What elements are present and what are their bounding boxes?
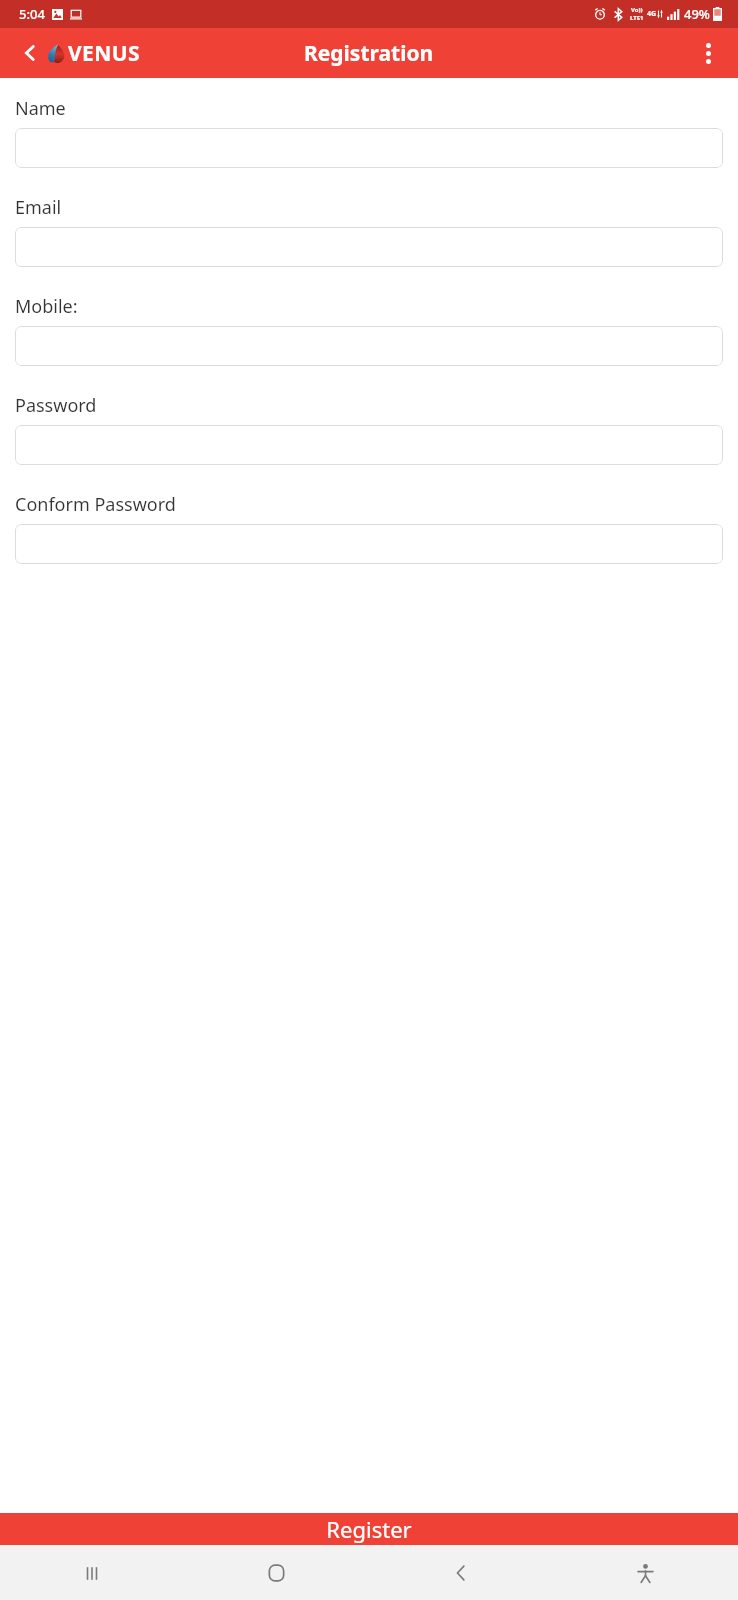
button[interactable]: VENUS <box>44 39 142 68</box>
button[interactable]: Home <box>184 1558 368 1588</box>
button[interactable]: Register <box>0 1513 738 1545</box>
button[interactable]: Back <box>368 1558 553 1588</box>
staticText: Vo)) <box>631 6 643 14</box>
button[interactable] <box>15 326 723 366</box>
staticText: Email <box>15 195 62 220</box>
staticText: 49% <box>684 5 710 23</box>
staticText: VENUS <box>68 39 140 68</box>
button[interactable] <box>15 524 723 564</box>
button[interactable]: Recent apps <box>0 1558 184 1588</box>
button[interactable]: More options <box>688 33 728 73</box>
staticText: 4G <box>647 9 657 19</box>
staticText: Name <box>15 96 66 121</box>
staticText: 5:04 <box>19 5 45 23</box>
staticText: LTE1 <box>630 14 644 22</box>
staticText: Mobile: <box>15 294 78 319</box>
button[interactable] <box>15 128 723 168</box>
button[interactable] <box>15 227 723 267</box>
staticText: Conform Password <box>15 492 176 517</box>
button[interactable]: Back <box>12 35 48 71</box>
staticText: Password <box>15 393 97 418</box>
button[interactable] <box>15 425 723 465</box>
staticText: Register <box>326 1514 412 1544</box>
button[interactable]: Accessibility <box>553 1558 738 1588</box>
staticText: Registration <box>304 39 434 68</box>
